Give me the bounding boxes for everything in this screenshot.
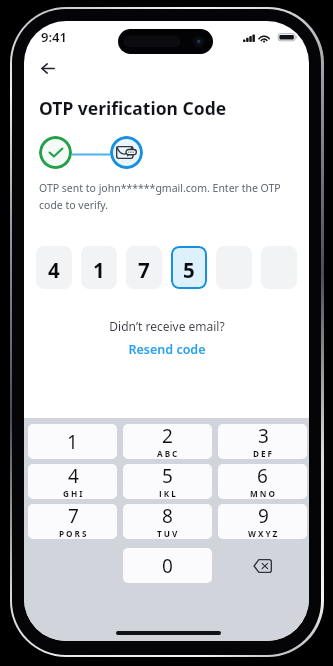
staticText: 5 <box>183 256 195 284</box>
staticText: 6 <box>257 464 268 489</box>
button[interactable]: 5 <box>123 464 212 499</box>
staticText: GHI <box>63 488 85 497</box>
button[interactable]: Resend code <box>122 339 212 360</box>
button[interactable]: 4 <box>36 246 72 289</box>
button[interactable]: 8 <box>123 504 212 539</box>
staticText: TUV <box>157 528 180 537</box>
staticText: 9 <box>258 504 269 529</box>
button[interactable]: 0 <box>123 548 212 583</box>
staticText: Resend code <box>128 341 206 358</box>
button[interactable]: Back <box>34 54 62 82</box>
staticText: 9:41 <box>41 28 67 46</box>
button[interactable]: 1 <box>28 424 117 459</box>
staticText: 8 <box>162 504 173 529</box>
staticText: JKL <box>159 488 178 497</box>
button[interactable]: 1 <box>81 246 117 289</box>
button[interactable]: 4 <box>28 464 117 499</box>
staticText: OTP verification Code <box>39 96 227 120</box>
button[interactable]: 6 <box>218 464 307 499</box>
button[interactable]: 3 <box>218 424 307 459</box>
staticText: 2 <box>162 424 173 449</box>
staticText: ABC <box>157 448 180 457</box>
staticText: 1 <box>93 256 105 284</box>
button[interactable]: Delete <box>218 548 307 583</box>
staticText: Didn’t receive email? <box>109 318 225 334</box>
staticText: 4 <box>68 464 79 489</box>
button[interactable]: 5 <box>171 246 207 289</box>
staticText: 3 <box>258 424 269 449</box>
button[interactable]: 7 <box>28 504 117 539</box>
staticText: OTP sent to john******gmail.com. Enter t… <box>39 181 297 212</box>
button[interactable]: 7 <box>126 246 162 289</box>
staticText: 5 <box>162 464 173 489</box>
staticText: 1 <box>67 429 78 455</box>
staticText: 0 <box>162 553 173 579</box>
staticText: PQRS <box>59 528 89 537</box>
button[interactable]: 9 <box>218 504 307 539</box>
staticText: 4 <box>48 256 60 284</box>
staticText: 7 <box>68 504 79 529</box>
button[interactable]: 2 <box>123 424 212 459</box>
staticText: WXYZ <box>248 528 280 537</box>
staticText: DEF <box>253 448 275 457</box>
staticText: MNO <box>250 488 277 497</box>
staticText: 7 <box>138 256 150 284</box>
